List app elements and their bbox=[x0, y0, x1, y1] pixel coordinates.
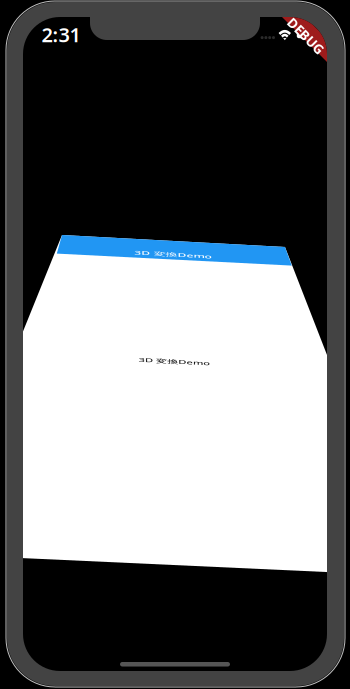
staticText: 2:31 bbox=[41, 21, 80, 48]
